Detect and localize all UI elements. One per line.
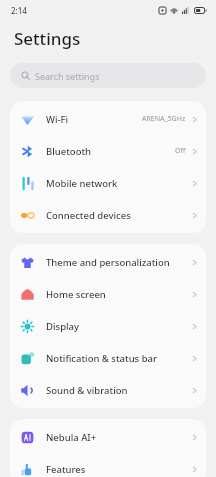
button[interactable]: Wi-Fi bbox=[10, 103, 206, 135]
staticText: Notification & status bar bbox=[46, 352, 158, 365]
other: Notification and status bar bbox=[21, 352, 34, 365]
other: Theme and personalization bbox=[21, 256, 34, 269]
button[interactable]: Theme and personalization bbox=[10, 246, 206, 278]
button[interactable]: Mobile network bbox=[10, 167, 206, 199]
staticText: Bluetooth bbox=[46, 145, 92, 158]
button[interactable]: Search bbox=[10, 63, 206, 88]
staticText: Off bbox=[175, 146, 186, 156]
button[interactable]: Features bbox=[10, 453, 206, 477]
button[interactable]: Sound and vibration bbox=[10, 374, 206, 406]
staticText: Theme and personalization bbox=[46, 256, 170, 269]
button[interactable]: Display bbox=[10, 310, 206, 342]
button[interactable]: Notification and status bar bbox=[10, 342, 206, 374]
other: Search bbox=[21, 71, 30, 80]
staticText: Settings bbox=[14, 27, 81, 50]
button[interactable]: Bluetooth bbox=[10, 135, 206, 167]
staticText: 2:14 bbox=[11, 5, 27, 16]
other: Mobile network bbox=[21, 177, 34, 190]
button[interactable]: Connected devices bbox=[10, 199, 206, 231]
staticText: Search settings bbox=[35, 70, 100, 82]
other: Features bbox=[21, 463, 34, 476]
other: Bluetooth bbox=[21, 145, 34, 158]
staticText: Nebula AI+ bbox=[46, 431, 97, 444]
other: Nebula AI plus bbox=[21, 431, 34, 444]
other: Sound and vibration bbox=[21, 384, 34, 397]
staticText: Mobile network bbox=[46, 177, 118, 190]
staticText: Display bbox=[46, 320, 80, 333]
staticText: Sound & vibration bbox=[46, 384, 128, 397]
staticText: Connected devices bbox=[46, 209, 131, 222]
other: Home screen bbox=[21, 288, 34, 301]
staticText: Wi-Fi bbox=[46, 113, 69, 126]
staticText: Features bbox=[46, 463, 86, 476]
staticText: ARENA_5GHz bbox=[142, 114, 186, 124]
button[interactable]: Home screen bbox=[10, 278, 206, 310]
other: Connected devices bbox=[21, 209, 34, 222]
other: Wi-Fi bbox=[21, 113, 34, 126]
staticText: Home screen bbox=[46, 288, 106, 301]
other: Display bbox=[21, 320, 34, 333]
button[interactable]: Nebula AI plus bbox=[10, 421, 206, 453]
